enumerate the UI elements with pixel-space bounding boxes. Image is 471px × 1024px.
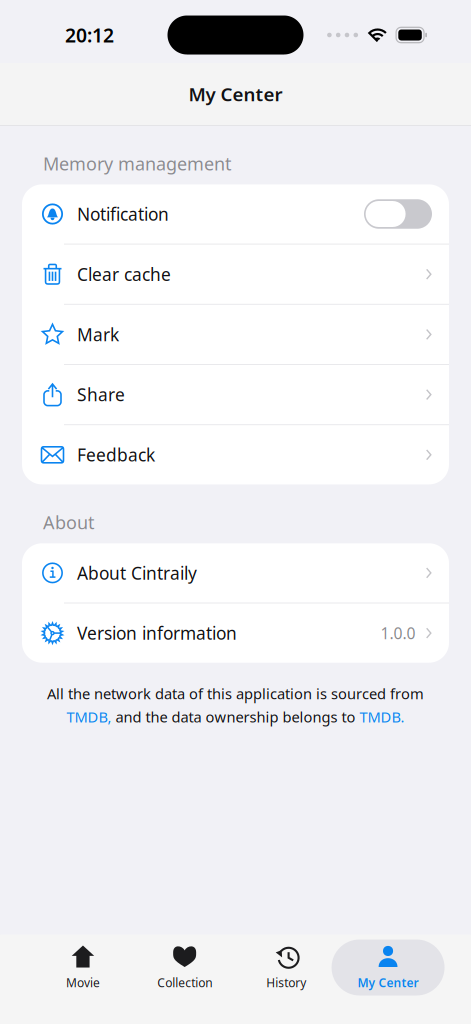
button[interactable]: Share <box>22 365 449 424</box>
button[interactable]: TMDB, <box>66 707 111 727</box>
staticText: Movie <box>66 974 100 990</box>
button[interactable]: TMDB. <box>359 707 404 727</box>
staticText: About Cintraily <box>77 561 197 584</box>
staticText: 20:12 <box>65 22 114 48</box>
button[interactable]: My Center <box>337 934 439 995</box>
button[interactable]: History <box>235 934 337 995</box>
button[interactable]: Notification <box>22 184 449 244</box>
button[interactable]: Clear cache <box>22 245 449 304</box>
button[interactable]: Mark <box>22 305 449 364</box>
staticText: Notification <box>77 202 169 225</box>
staticText: My Center <box>188 82 282 106</box>
staticText: Collection <box>157 974 212 990</box>
button[interactable]: Movie <box>32 934 134 995</box>
staticText: TMDB. <box>359 707 404 727</box>
button[interactable]: Version information <box>22 603 449 663</box>
staticText: All the network data of this application… <box>47 684 424 703</box>
staticText: Share <box>77 383 125 406</box>
staticText: Feedback <box>77 443 155 466</box>
staticText: and the data ownership belongs to <box>111 707 359 727</box>
staticText: Version information <box>77 622 237 645</box>
button[interactable]: Collection <box>134 934 235 995</box>
staticText: Mark <box>77 323 119 346</box>
staticText: Clear cache <box>77 263 171 286</box>
staticText: History <box>266 974 306 990</box>
staticText: Memory management <box>43 151 231 175</box>
staticText: My Center <box>358 974 419 990</box>
button[interactable]: About Cintraily <box>22 543 449 602</box>
button[interactable]: Feedback <box>22 425 449 484</box>
staticText: 1.0.0 <box>380 623 415 644</box>
staticText: TMDB, <box>66 707 111 727</box>
staticText: About <box>43 510 94 534</box>
